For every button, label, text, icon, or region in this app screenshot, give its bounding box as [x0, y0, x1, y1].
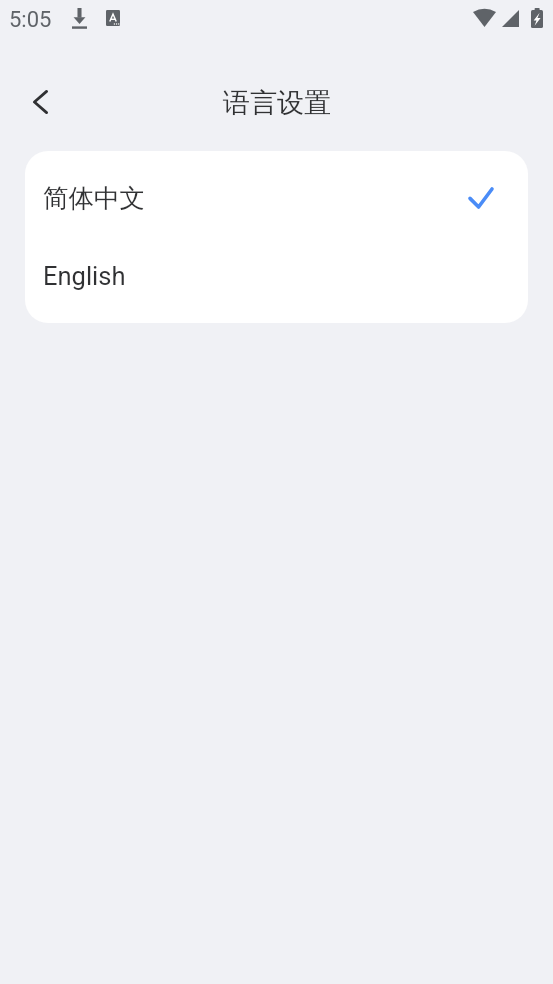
staticText: 语言设置: [223, 86, 331, 120]
other: Download: [72, 8, 87, 29]
other: Wi-Fi: [473, 9, 496, 27]
button[interactable]: Back: [19, 81, 61, 123]
other: Battery charging: [531, 8, 543, 28]
staticText: 5:05: [9, 7, 52, 33]
staticText: 简体中文: [43, 182, 145, 214]
other: Live caption: [106, 10, 120, 26]
other: Mobile signal: [502, 10, 519, 27]
staticText: English: [43, 261, 126, 291]
button[interactable]: 简体中文: [25, 159, 528, 237]
button[interactable]: English: [25, 237, 528, 315]
